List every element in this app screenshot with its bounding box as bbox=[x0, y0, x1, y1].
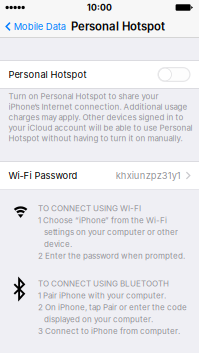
staticText: your iCloud account will be able to use … bbox=[8, 123, 192, 133]
staticText: Mobile Data bbox=[14, 21, 66, 32]
staticText: settings on your computer or other bbox=[44, 227, 178, 237]
staticText: 1 Choose “iPhone” from the Wi-Fi bbox=[38, 215, 167, 225]
staticText: 1 Pair iPhone with your computer. bbox=[38, 291, 166, 300]
staticText: 3 Connect to iPhone from computer. bbox=[38, 326, 180, 336]
staticText: charges may apply. Other devices signed … bbox=[8, 112, 183, 122]
staticText: 10:00 bbox=[87, 2, 112, 13]
staticText: Personal Hotspot bbox=[71, 20, 165, 33]
staticText: TO CONNECT USING WI-FI bbox=[38, 204, 141, 213]
staticText: Personal Hotspot bbox=[8, 69, 86, 80]
button[interactable]: Personal Hotspot bbox=[0, 61, 199, 88]
button[interactable]: Mobile Data bbox=[0, 15, 69, 38]
staticText: 2 On iPhone, tap Pair or enter the code bbox=[38, 302, 187, 312]
staticText: TO CONNECT USING BLUETOOTH bbox=[38, 279, 169, 288]
staticText: 2 Enter the password when prompted. bbox=[38, 251, 185, 261]
staticText: Turn on Personal Hotspot to share your bbox=[8, 91, 158, 101]
staticText: displayed on your computer. bbox=[44, 314, 153, 324]
staticText: device. bbox=[44, 239, 72, 249]
staticText: Wi-Fi Password bbox=[8, 170, 77, 181]
button[interactable]: Wi-Fi Password bbox=[0, 162, 199, 189]
staticText: Hotspot without having to turn it on man… bbox=[8, 133, 182, 143]
staticText: khxiunzpz31y1 bbox=[116, 170, 181, 181]
staticText: iPhone’s Internet connection. Additional… bbox=[8, 102, 187, 112]
